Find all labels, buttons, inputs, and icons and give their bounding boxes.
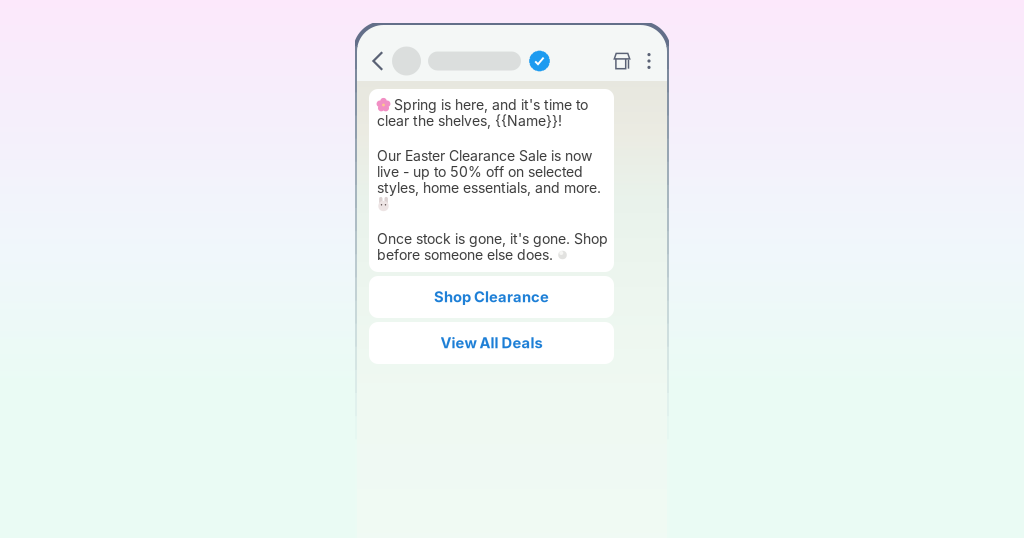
- button[interactable]: More options: [637, 44, 661, 78]
- staticText: Once stock is gone, it's gone. Shop: [377, 230, 608, 247]
- button[interactable]: Shop Clearance: [369, 276, 614, 318]
- staticText: styles, home essentials, and more.: [377, 179, 601, 196]
- staticText: before someone else does.: [377, 246, 553, 263]
- staticText: Our Easter Clearance Sale is now: [377, 147, 592, 164]
- staticText: live - up to 50% off on selected: [377, 163, 583, 180]
- button[interactable]: Back: [364, 44, 392, 78]
- button[interactable]: View All Deals: [369, 322, 614, 364]
- button[interactable]: Store: [607, 44, 637, 78]
- button[interactable]: Contact name, verified: [392, 44, 550, 78]
- staticText: Spring is here, and it's time to: [394, 96, 588, 113]
- staticText: clear the shelves, {{Name}}!: [377, 112, 562, 129]
- staticText: Shop Clearance: [434, 288, 549, 306]
- staticText: View All Deals: [440, 334, 542, 352]
